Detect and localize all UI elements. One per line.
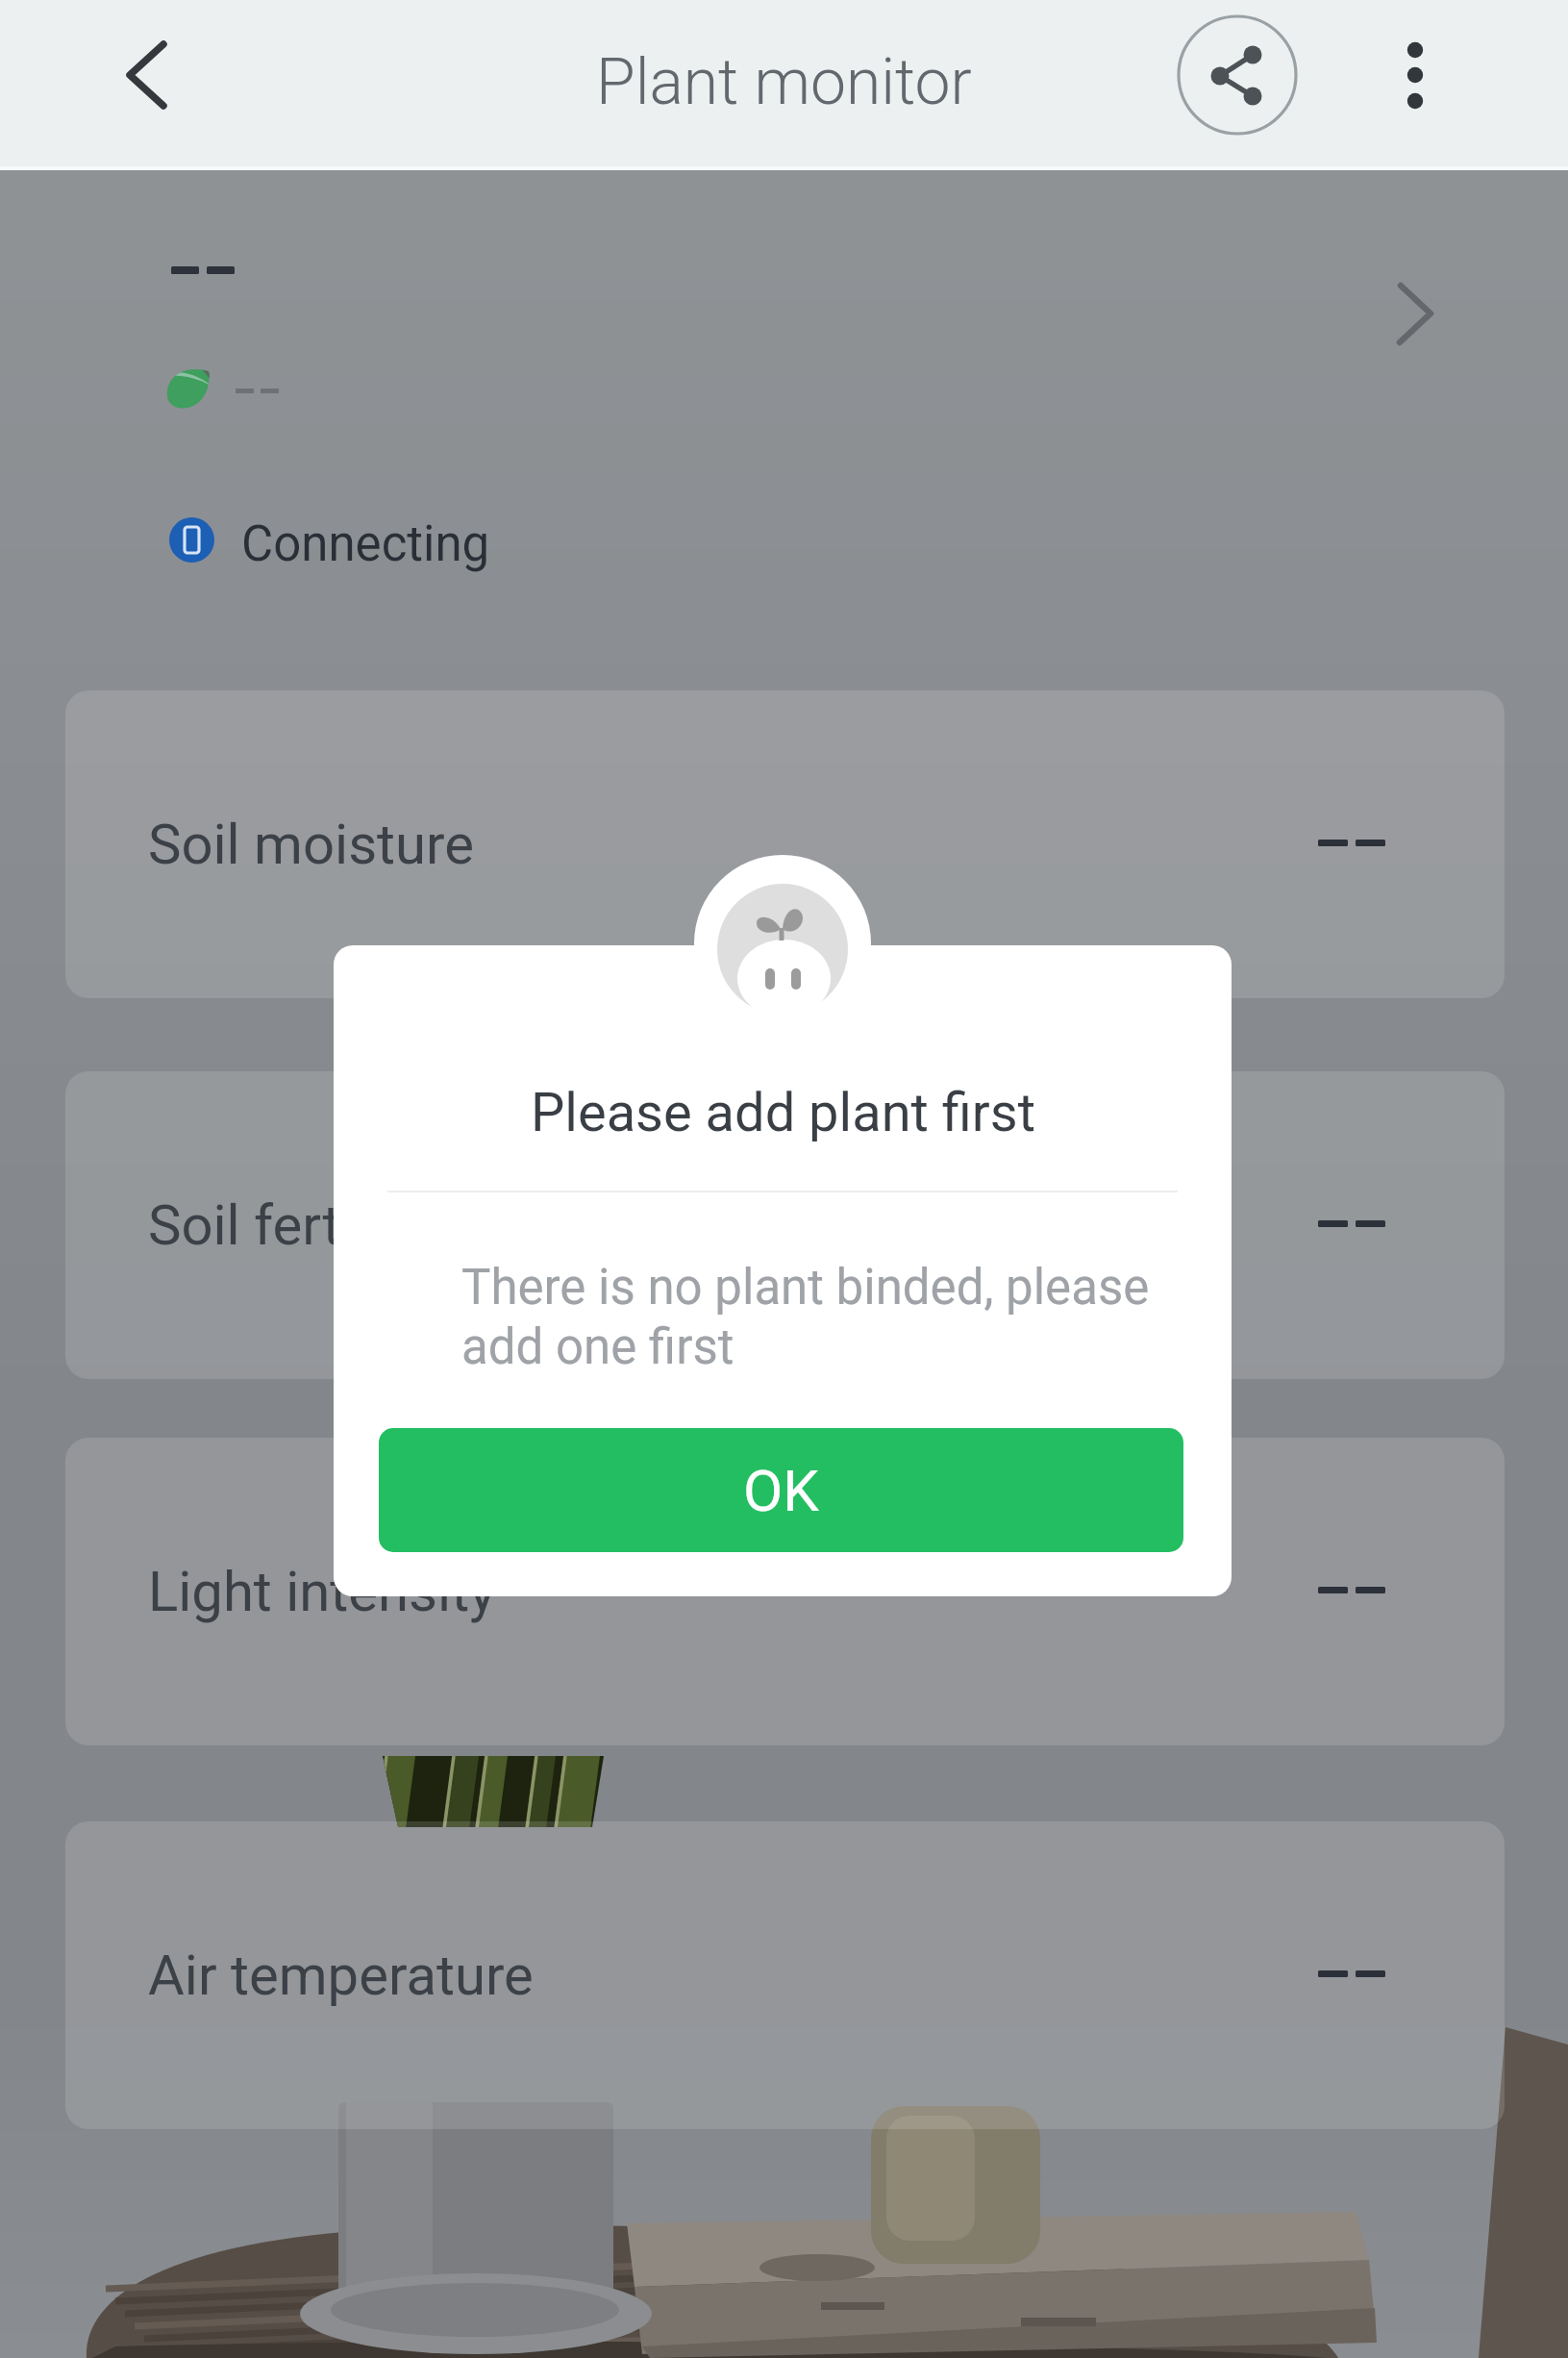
staticText: Please add plant first [531,1081,1035,1144]
button[interactable]: Share [1172,10,1303,140]
button[interactable]: Soil fertility [65,1071,1505,1379]
staticText: Soil fertility [148,1192,427,1258]
button[interactable]: Soil moisture [65,690,1505,998]
staticText: Plant monitor [596,45,972,119]
staticText: Light intensity [148,1559,496,1624]
staticText: OK [743,1457,819,1524]
button[interactable]: OK [379,1428,1183,1552]
staticText: Connecting [241,515,490,573]
button[interactable]: Light intensity [65,1438,1505,1745]
staticText: There is no plant binded, please add one… [461,1259,1211,1376]
staticText: Soil moisture [148,812,474,877]
button[interactable]: Plant details [1365,250,1481,365]
button[interactable]: More options [1357,17,1473,133]
button[interactable]: Back [82,19,193,131]
staticText: Air temperature [148,1943,534,2008]
button[interactable]: Air temperature [65,1821,1505,2129]
